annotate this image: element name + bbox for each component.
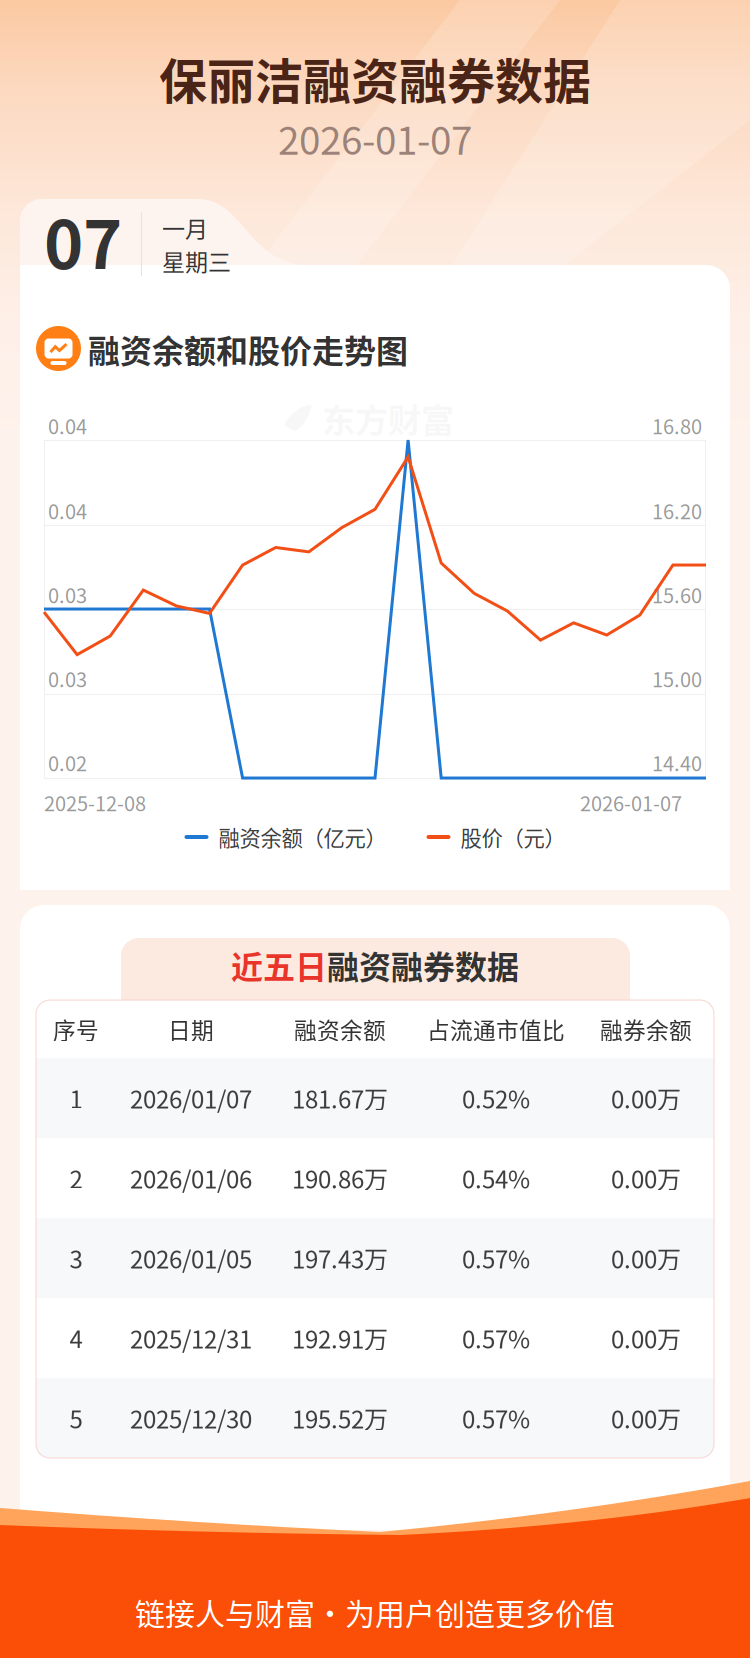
staticText: 5 (69, 1401, 82, 1435)
staticText: 序号 (53, 1013, 99, 1045)
staticText: 股价（元） (460, 822, 565, 852)
staticText: 占流通市值比 (427, 1013, 565, 1045)
staticText: 融券余额 (600, 1013, 692, 1045)
staticText: 14.40 (652, 748, 702, 777)
staticText: 链接人与财富·为用户创造更多价值 (135, 1590, 615, 1634)
staticText: 融资融券数据 (327, 942, 519, 988)
staticText: 0.57% (462, 1401, 530, 1435)
staticText: 16.80 (652, 411, 702, 440)
staticText: 日期 (168, 1013, 214, 1045)
staticText: 融资余额和股价走势图 (88, 326, 408, 372)
staticText: 190.86万 (292, 1161, 388, 1195)
staticText: 东方财富 (322, 394, 454, 442)
staticText: 2026-01-07 (278, 110, 472, 166)
staticText: 0.03 (48, 664, 87, 693)
staticText: 3 (69, 1241, 82, 1275)
staticText: 0.00万 (611, 1161, 681, 1195)
staticText: 2026-01-07 (580, 788, 682, 817)
staticText: 近五日 (231, 942, 327, 988)
staticText: 0.00万 (611, 1241, 681, 1275)
staticText: 0.04 (48, 496, 87, 525)
staticText: 2025/12/30 (130, 1401, 252, 1435)
staticText: 195.52万 (292, 1401, 388, 1435)
staticText: 0.54% (462, 1161, 530, 1195)
staticText: 16.20 (652, 496, 702, 525)
staticText: 181.67万 (292, 1081, 388, 1115)
staticText: 15.60 (652, 580, 702, 609)
staticText: 一月 (162, 211, 208, 244)
staticText: 2025-12-08 (44, 788, 146, 817)
staticText: 2025/12/31 (130, 1321, 252, 1355)
staticText: 0.00万 (611, 1401, 681, 1435)
staticText: 07 (44, 192, 122, 288)
staticText: 星期三 (162, 244, 231, 277)
staticText: 15.00 (652, 664, 702, 693)
staticText: 0.03 (48, 580, 87, 609)
staticText: 0.00万 (611, 1081, 681, 1115)
staticText: 0.57% (462, 1321, 530, 1355)
staticText: 0.04 (48, 411, 87, 440)
staticText: 192.91万 (292, 1321, 388, 1355)
staticText: 融资余额 (294, 1013, 386, 1045)
staticText: 4 (69, 1321, 82, 1355)
staticText: 0.00万 (611, 1321, 681, 1355)
staticText: 保丽洁融资融券数据 (159, 43, 591, 113)
staticText: 2026/01/06 (130, 1161, 252, 1195)
staticText: 0.02 (48, 748, 87, 777)
staticText: 2026/01/07 (130, 1081, 252, 1115)
staticText: 2026/01/05 (130, 1241, 252, 1275)
staticText: 0.57% (462, 1241, 530, 1275)
staticText: 2 (69, 1161, 82, 1195)
staticText: 197.43万 (292, 1241, 388, 1275)
staticText: 0.52% (462, 1081, 530, 1115)
staticText: 1 (69, 1081, 82, 1115)
staticText: 融资余额（亿元） (218, 822, 386, 852)
